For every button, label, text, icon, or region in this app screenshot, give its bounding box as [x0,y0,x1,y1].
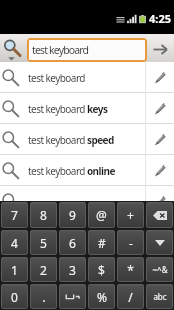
button[interactable] [59,284,86,309]
staticText: * [127,262,134,278]
staticText: 7 [11,207,18,223]
staticText: 8 [40,207,47,223]
button[interactable]: 3 [59,257,86,282]
staticText: test keyboard keys [28,102,145,116]
button[interactable] [146,230,173,255]
staticText: test keyboard speed [28,133,145,147]
staticText: test keyboard [28,71,145,85]
staticText: 2 [40,262,47,278]
button[interactable]: Edit suggestion [145,62,174,93]
staticText: + [127,207,134,223]
button[interactable]: 4 [1,230,28,255]
staticText: - [129,235,133,251]
button[interactable]: Search [147,37,174,62]
staticText: ~^& [152,264,168,275]
staticText: % [97,289,107,305]
button[interactable]: Search source [0,34,27,62]
staticText [28,195,145,209]
button[interactable]: 6 [59,230,86,255]
button[interactable]: Edit suggestion [145,186,174,217]
staticText: @ [96,207,107,223]
button[interactable]: * [117,257,144,282]
staticText: 4:25 [149,11,171,26]
staticText: 3 [69,262,76,278]
button[interactable]: + [117,202,144,228]
button[interactable]: Edit suggestion [145,155,174,186]
button[interactable]: test keyboard [27,38,147,62]
button[interactable]: 1 [1,257,28,282]
staticText: 6 [69,235,76,251]
button[interactable]: 9 [59,202,86,228]
button[interactable]: Edit suggestion [145,93,174,124]
button[interactable]: @ [88,202,115,228]
staticText: . [42,289,46,305]
button[interactable]: 7 [1,202,28,228]
button[interactable]: test keyboard speed [0,124,174,155]
button[interactable]: test keyboard keys [0,93,174,124]
button[interactable] [146,202,173,228]
button[interactable]: - [117,230,144,255]
staticText: 0 [11,289,18,305]
button[interactable]: Edit suggestion [145,124,174,155]
button[interactable]: test keyboard [0,62,174,93]
staticText: # [98,235,106,251]
staticText: test keyboard [32,43,89,57]
button[interactable]: 0 [1,284,28,309]
staticText: 4 [11,235,18,251]
button[interactable]: % [88,284,115,309]
button[interactable]: ~^& [146,257,173,282]
button[interactable]: # [88,230,115,255]
button[interactable]: $ [88,257,115,282]
button[interactable]: 5 [30,230,57,255]
staticText: test keyboard online [28,164,145,178]
staticText: abc [153,291,167,302]
staticText: 5 [40,235,47,251]
button[interactable]: Edit suggestion [0,186,174,217]
button[interactable]: . [30,284,57,309]
staticText: / [128,289,133,305]
button[interactable]: 2 [30,257,57,282]
button[interactable]: 8 [30,202,57,228]
staticText: 1 [11,262,18,278]
button[interactable]: test keyboard online [0,155,174,186]
button[interactable]: abc [146,284,173,309]
staticText: 9 [69,207,76,223]
staticText: $ [98,262,105,278]
button[interactable]: / [117,284,144,309]
